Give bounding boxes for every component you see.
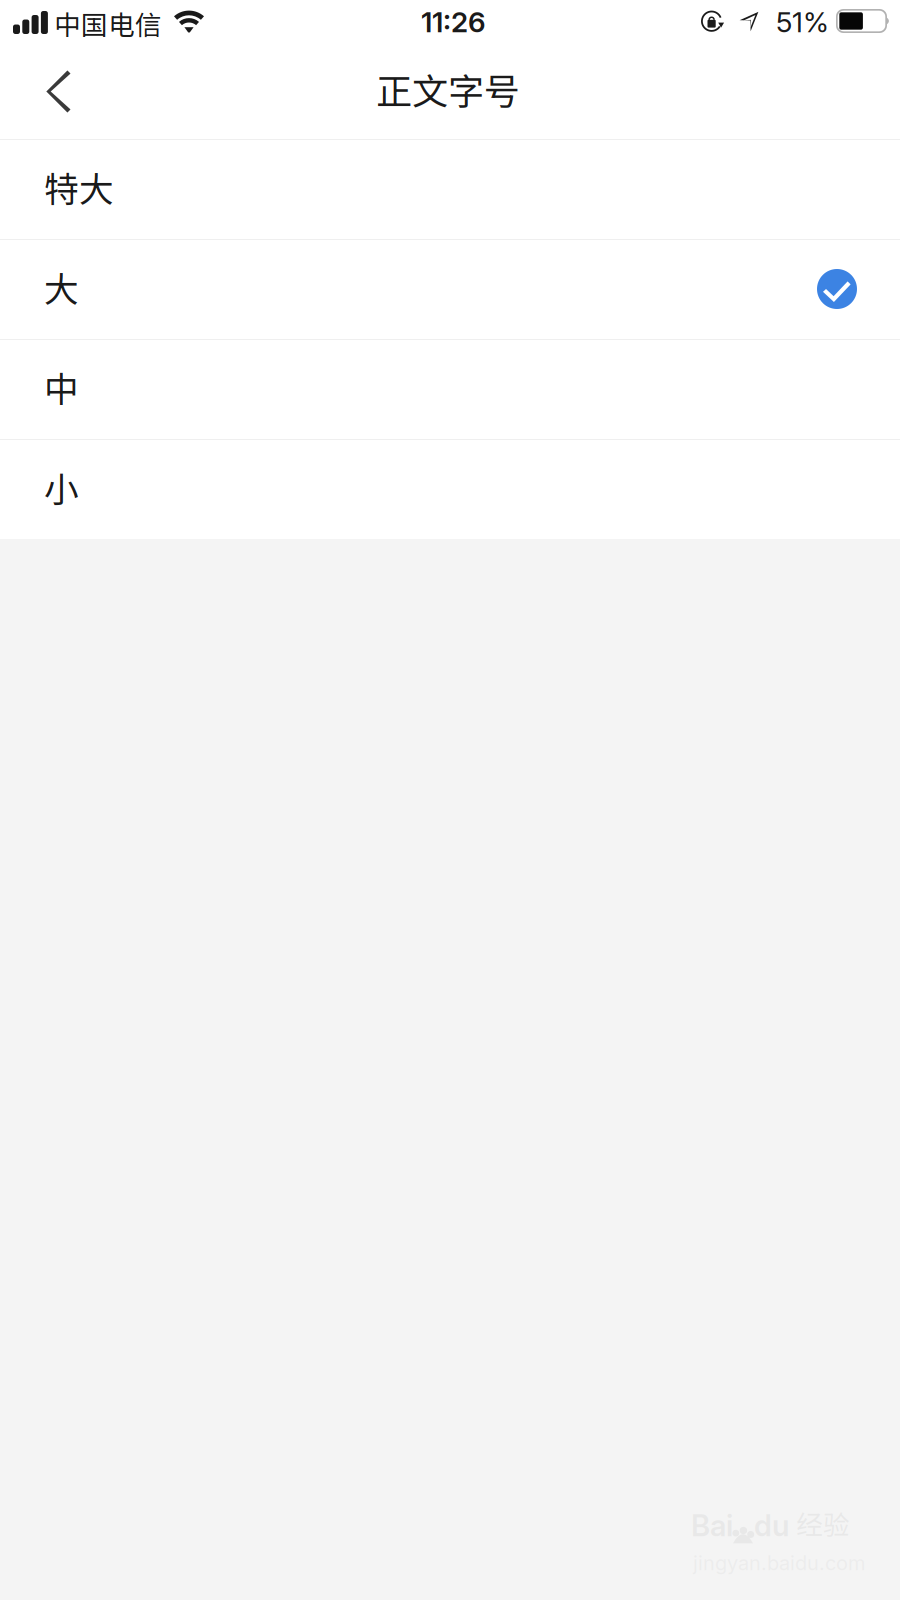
button[interactable]: 特大 [0,139,900,239]
staticText: 经验 [796,1504,850,1542]
staticText: 特大 [44,162,114,212]
staticText: Bai [691,1508,733,1543]
staticText: 大 [44,262,79,312]
staticText: 11:26 [421,5,486,39]
button[interactable]: 小 [0,439,900,539]
button[interactable]: 大 [0,239,900,339]
staticText: 中 [44,362,79,412]
button[interactable]: Back [0,45,118,139]
staticText: du [754,1508,789,1543]
staticText: 51% [776,5,829,39]
staticText: 正文字号 [376,63,520,115]
button[interactable]: 中 [0,339,900,439]
staticText: 中国电信 [54,4,162,43]
staticText: 小 [44,462,79,512]
